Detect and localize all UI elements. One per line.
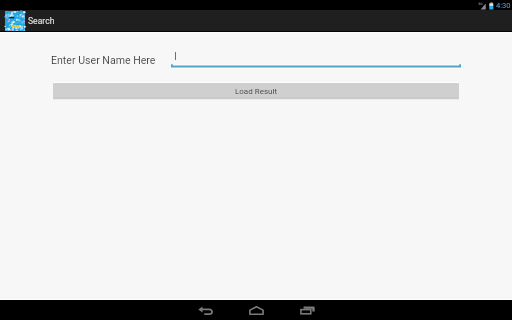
staticText: 4:30 [496,1,511,10]
button[interactable] [171,49,461,70]
staticText: Search [28,16,55,26]
staticText: Enter User Name Here [51,54,156,66]
button[interactable]: Back [184,300,227,320]
button[interactable]: Home [235,300,278,320]
button[interactable]: Load Result [53,82,459,100]
button[interactable]: Recent apps [286,300,329,320]
staticText: Load Result [235,87,277,96]
